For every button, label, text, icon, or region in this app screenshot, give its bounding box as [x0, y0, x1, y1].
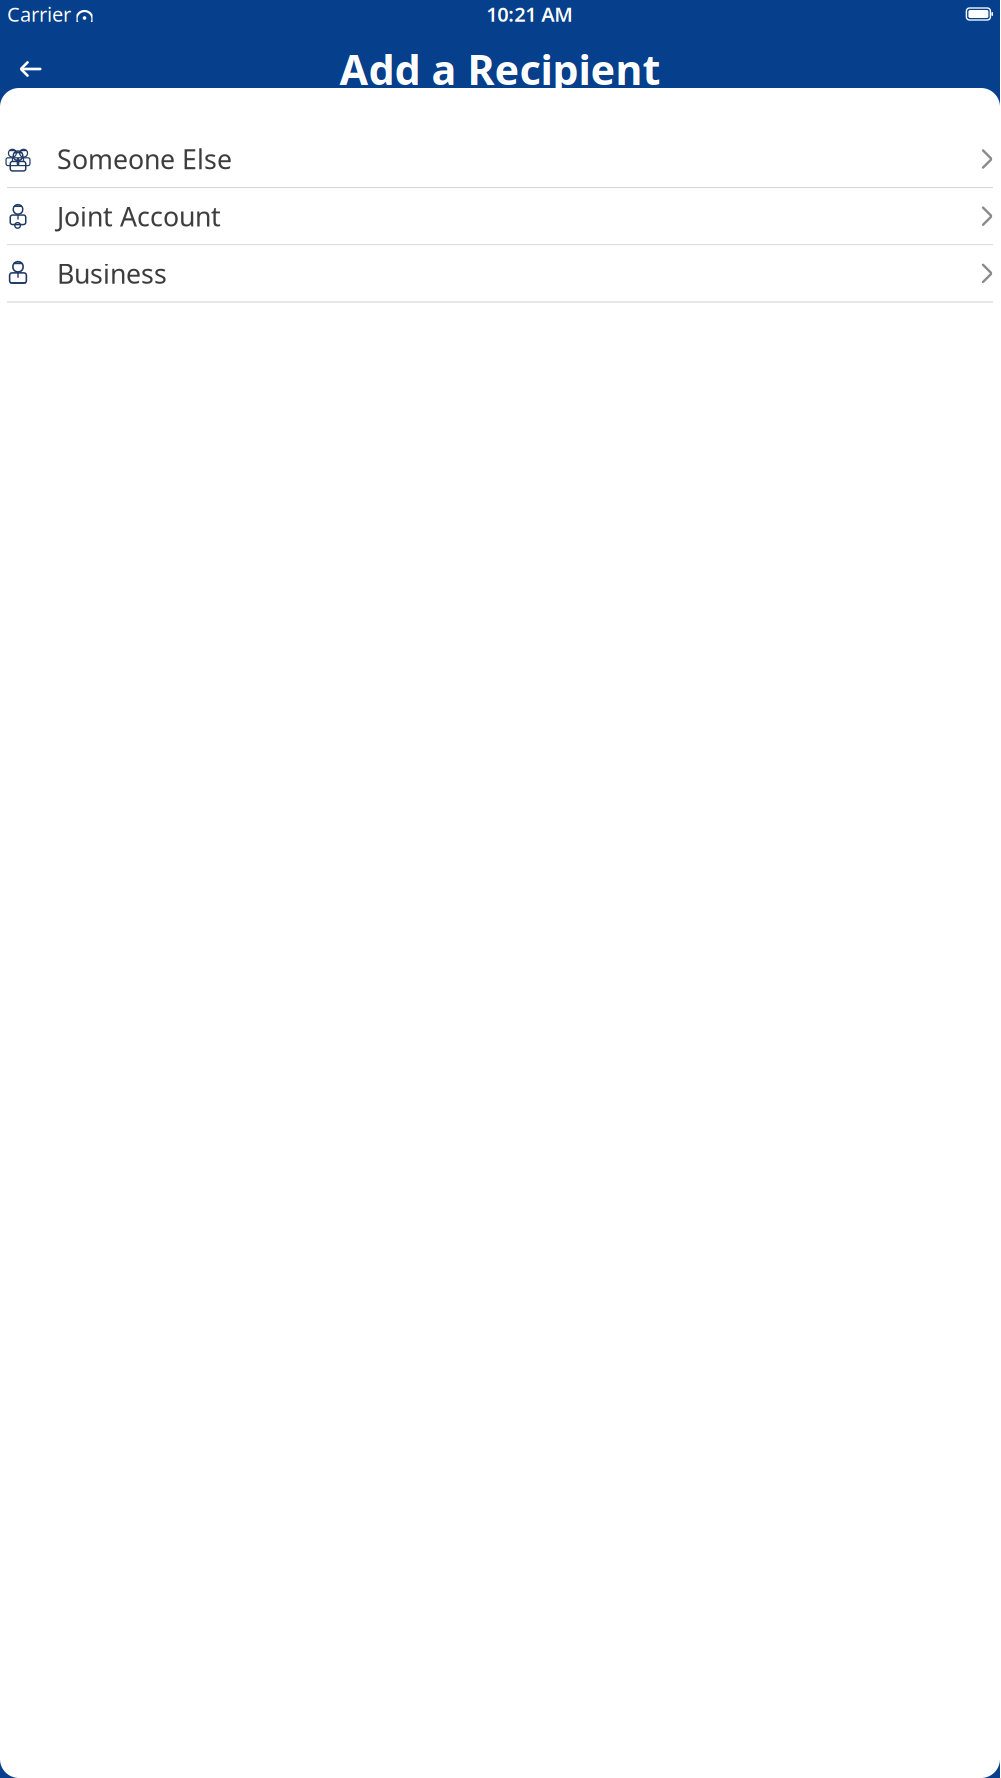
- staticText: Add a Recipient: [339, 42, 660, 96]
- button[interactable]: Back: [8, 46, 54, 92]
- staticText: Carrier: [7, 1, 71, 27]
- staticText: 10:21 AM: [486, 1, 573, 27]
- button[interactable]: Joint Account: [0, 188, 1000, 244]
- staticText: Joint Account: [57, 198, 221, 234]
- staticText: Someone Else: [57, 141, 232, 177]
- button[interactable]: Someone Else: [0, 131, 1000, 187]
- button[interactable]: Business: [0, 245, 1000, 301]
- staticText: Business: [57, 256, 167, 291]
